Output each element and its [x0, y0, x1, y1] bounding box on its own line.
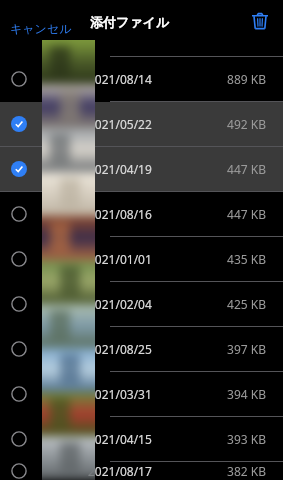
button[interactable]: Delete [245, 6, 275, 36]
staticText: 425 KB [227, 296, 266, 312]
staticText: 447 KB [227, 206, 266, 222]
staticText: 382 KB [227, 463, 266, 479]
staticText: 393 KB [227, 431, 266, 447]
staticText: キャンセル [10, 21, 72, 36]
button[interactable]: 2021/01/01 [0, 237, 283, 281]
staticText: 435 KB [227, 251, 266, 267]
button[interactable]: 2021/05/22 [0, 102, 283, 146]
staticText: 2021/08/25 [88, 341, 152, 357]
staticText: 889 KB [227, 71, 266, 87]
button[interactable]: 2021/08/17 [0, 462, 283, 480]
staticText: 397 KB [227, 341, 266, 357]
staticText: 394 KB [227, 386, 266, 402]
staticText: 2021/08/16 [88, 206, 152, 222]
button[interactable]: 2021/03/31 [0, 372, 283, 416]
staticText: 2021/04/19 [88, 161, 152, 177]
staticText: 2021/05/22 [88, 116, 152, 132]
staticText: 2021/01/01 [88, 251, 152, 267]
button[interactable]: 2021/08/16 [0, 192, 283, 236]
staticText: 2021/08/17 [88, 463, 152, 479]
button[interactable]: 2021/04/15 [0, 417, 283, 461]
button[interactable]: 2021/02/04 [0, 282, 283, 326]
staticText: 添付ファイル [90, 14, 170, 30]
staticText: 2021/04/15 [88, 431, 152, 447]
staticText: 2021/03/31 [88, 386, 152, 402]
button[interactable]: キャンセル [4, 15, 78, 42]
button[interactable]: 2021/08/14 [0, 57, 283, 101]
staticText: 2021/08/14 [88, 71, 152, 87]
button[interactable]: 2021/04/19 [0, 147, 283, 191]
staticText: 2021/02/04 [88, 296, 152, 312]
button[interactable]: 2021/08/25 [0, 327, 283, 371]
staticText: 492 KB [227, 116, 266, 132]
staticText: 447 KB [227, 161, 266, 177]
